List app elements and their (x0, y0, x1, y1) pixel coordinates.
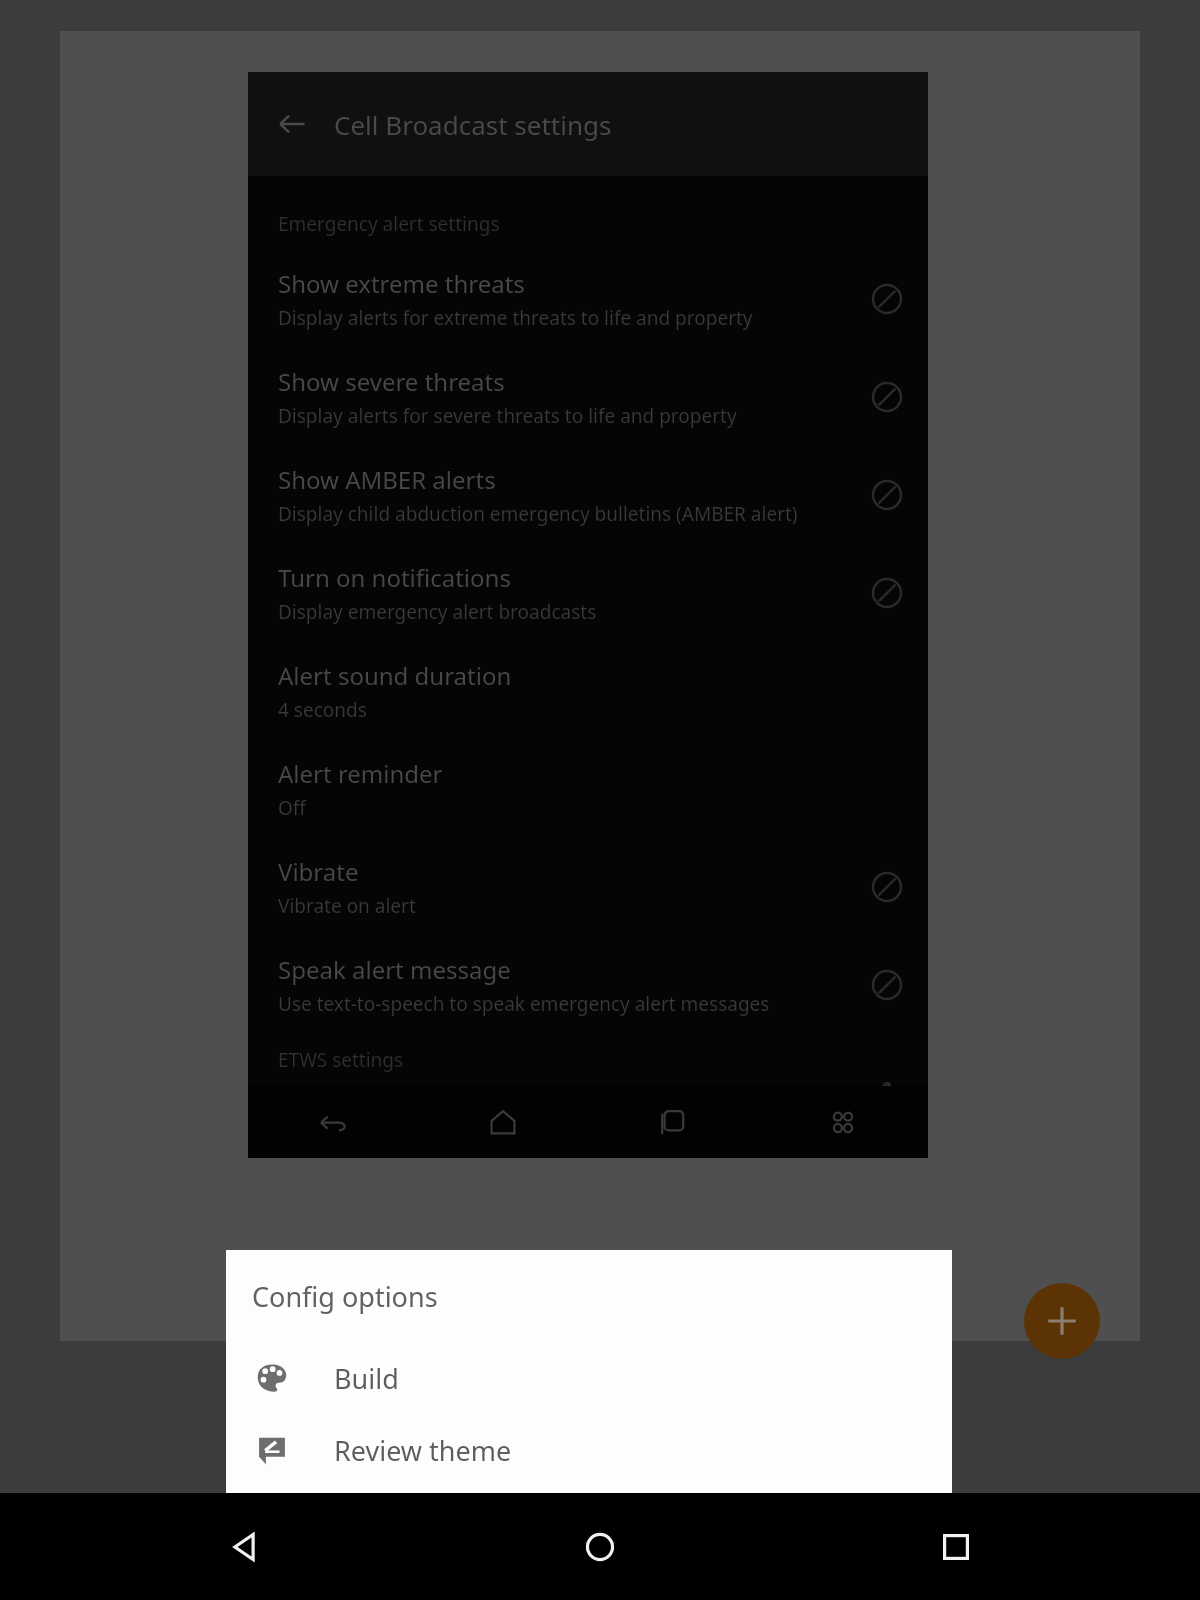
staticText: Config options (252, 1278, 438, 1315)
button[interactable]: Build (226, 1342, 952, 1414)
staticText: Display alerts for severe threats to lif… (278, 403, 737, 429)
button[interactable]: Add (1024, 1283, 1100, 1359)
button[interactable]: Apps (758, 1086, 928, 1158)
button[interactable]: Home (418, 1086, 588, 1158)
staticText: Show AMBER alerts (278, 463, 496, 496)
staticText: Use text-to-speech to speak emergency al… (278, 991, 770, 1017)
staticText: Alert sound duration (278, 659, 512, 692)
button[interactable]: Back (202, 1505, 286, 1589)
button[interactable]: Recents (914, 1505, 998, 1589)
button[interactable]: Show extreme threats (248, 250, 928, 348)
button[interactable]: Speak alert message (248, 936, 928, 1034)
staticText: Cell Broadcast settings (334, 107, 612, 142)
staticText: Vibrate on alert (278, 893, 416, 919)
staticText: Build (334, 1360, 399, 1397)
staticText: Alert reminder (278, 757, 443, 790)
staticText: Show extreme threats (278, 267, 525, 300)
button[interactable]: Alert reminder (248, 740, 928, 838)
button[interactable]: Back (248, 1086, 418, 1158)
staticText: Vibrate (278, 855, 359, 888)
button[interactable]: Review theme (226, 1414, 952, 1486)
staticText: ETWS settings (278, 1047, 404, 1073)
button[interactable]: Back (264, 96, 320, 152)
staticText: Review theme (334, 1432, 512, 1469)
staticText: 4 seconds (278, 697, 367, 723)
button[interactable]: Show AMBER alerts (248, 446, 928, 544)
staticText: Emergency alert settings (278, 211, 500, 237)
staticText: Speak alert message (278, 953, 511, 986)
staticText: Display child abduction emergency bullet… (278, 501, 798, 527)
staticText: Off (278, 795, 306, 821)
button[interactable]: Recents (588, 1086, 758, 1158)
staticText: Show severe threats (278, 365, 505, 398)
staticText: Turn on notifications (278, 561, 511, 594)
button[interactable]: Alert sound duration (248, 642, 928, 740)
staticText: Display alerts for extreme threats to li… (278, 305, 753, 331)
button[interactable]: Vibrate (248, 838, 928, 936)
button[interactable]: Turn on notifications (248, 544, 928, 642)
button[interactable]: Home (558, 1505, 642, 1589)
staticText: Display emergency alert broadcasts (278, 599, 597, 625)
button[interactable]: Show severe threats (248, 348, 928, 446)
